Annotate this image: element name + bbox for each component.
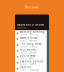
staticText: Sports Wrap (20, 54, 36, 57)
staticText: Evening Edition (20, 60, 44, 63)
staticText: Morning Briefing (20, 30, 44, 33)
staticText: 9 min · Comment (20, 69, 39, 72)
button[interactable]: Tech Weekly (15, 48, 47, 54)
staticText: The Long Read (20, 42, 42, 45)
staticText: Opinion (20, 66, 32, 69)
button[interactable]: Markets Today (15, 36, 47, 42)
staticText: 8 min · Business (20, 39, 37, 42)
staticText: 12 min · Politics (20, 33, 38, 36)
button[interactable]: Discover (15, 6, 49, 9)
button[interactable]: The Long Read (15, 42, 47, 48)
button[interactable]: Sports Wrap (15, 54, 47, 60)
button[interactable]: Morning Briefing (15, 30, 47, 36)
staticText: Sponsored (17, 27, 26, 29)
staticText: 15 min · Science (20, 51, 37, 54)
staticText: 18 min · World (20, 63, 36, 66)
staticText: Tech Weekly (20, 48, 36, 51)
button[interactable]: Evening Edition (15, 60, 47, 66)
button[interactable]: Opinion (15, 66, 47, 72)
staticText: Markets Today (20, 36, 37, 39)
staticText: Discover (25, 5, 39, 9)
staticText: 22 min · Culture (20, 45, 38, 48)
staticText: Featured story of the week (17, 24, 44, 26)
staticText: 6 min · Sport (20, 57, 34, 60)
